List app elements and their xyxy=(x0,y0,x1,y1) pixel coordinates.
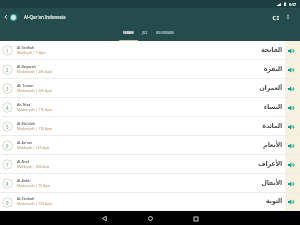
button[interactable]: BOOKMARK xyxy=(156,26,175,41)
staticText: SURAH xyxy=(123,31,134,35)
staticText: JUZ xyxy=(142,31,148,35)
staticText: 9:17 xyxy=(289,2,296,7)
staticText: At-Taubah xyxy=(17,196,35,201)
staticText: آلعمران xyxy=(259,84,282,92)
staticText: Makkiyah | 206 Ayat xyxy=(17,164,50,169)
button[interactable]: SURAH xyxy=(123,26,134,41)
button[interactable]: 3 xyxy=(0,79,300,98)
staticText: 9 xyxy=(6,200,9,206)
button[interactable]: 9 xyxy=(0,193,300,211)
button[interactable]: Play audio xyxy=(285,155,300,174)
staticText: Madaniyah | 75 Ayat xyxy=(17,183,51,188)
staticText: الأنفال xyxy=(261,179,282,187)
staticText: Al-A'raf xyxy=(17,159,30,164)
staticText: An-Nisa' xyxy=(17,102,32,107)
button[interactable]: Play audio xyxy=(285,79,300,98)
button[interactable]: 1 xyxy=(0,41,300,60)
staticText: Al-Baqarah xyxy=(17,64,36,69)
staticText: الأنعام xyxy=(263,141,282,149)
staticText: المائدة xyxy=(262,122,282,130)
button[interactable]: JUZ xyxy=(142,26,148,41)
button[interactable]: Play audio xyxy=(285,136,300,155)
button[interactable]: Play audio xyxy=(285,174,300,193)
button[interactable]: Play audio xyxy=(285,117,300,136)
staticText: Madaniyah | 176 Ayat xyxy=(17,107,53,112)
button[interactable]: Back xyxy=(2,13,10,21)
staticText: Makkiyah | 7 Ayat xyxy=(17,50,46,55)
staticText: Ali 'Imran xyxy=(17,83,34,88)
staticText: 8 xyxy=(6,181,9,187)
staticText: Al-Ma'idah xyxy=(17,121,36,126)
button[interactable]: Play audio xyxy=(285,41,300,60)
staticText: Madaniyah | 286 Ayat xyxy=(17,69,53,74)
staticText: الأعراف xyxy=(258,160,282,168)
staticText: 7 xyxy=(6,162,9,168)
staticText: Madaniyah | 129 Ayat xyxy=(17,201,53,206)
staticText: 3 xyxy=(6,86,9,92)
button[interactable]: 5 xyxy=(0,117,300,136)
staticText: Madaniyah | 120 Ayat xyxy=(17,126,53,131)
button[interactable]: 2 xyxy=(0,60,300,79)
staticText: 5 xyxy=(6,124,9,130)
button[interactable]: Home xyxy=(144,212,157,225)
staticText: Al-Qur'an Indonesia xyxy=(24,14,66,20)
button[interactable]: 8 xyxy=(0,174,300,193)
staticText: 4 xyxy=(6,105,9,111)
button[interactable]: Recent apps xyxy=(189,212,202,225)
staticText: 1 xyxy=(6,48,9,54)
staticText: 6 xyxy=(6,143,9,149)
button[interactable]: 6 xyxy=(0,136,300,155)
staticText: Al-Fatihah xyxy=(17,45,35,50)
button[interactable]: 7 xyxy=(0,155,300,174)
staticText: Madaniyah | 200 Ayat xyxy=(17,88,53,93)
staticText: Al-Anfal xyxy=(17,178,31,183)
staticText: الفاتحة xyxy=(260,46,282,54)
staticText: التوبة xyxy=(265,197,282,205)
button[interactable]: Sort xyxy=(270,12,281,23)
staticText: Makkiyah | 165 Ayat xyxy=(17,145,50,150)
button[interactable]: Play audio xyxy=(285,60,300,79)
staticText: 2 xyxy=(6,67,9,73)
staticText: BOOKMARK xyxy=(156,31,175,35)
button[interactable]: 4 xyxy=(0,98,300,117)
button[interactable]: Play audio xyxy=(285,98,300,117)
button[interactable]: Play audio xyxy=(285,193,300,211)
staticText: النساء xyxy=(263,103,282,111)
button[interactable]: More options xyxy=(283,12,293,22)
staticText: Al-An'am xyxy=(17,140,33,145)
staticText: البقرة xyxy=(263,65,282,73)
button[interactable]: Back xyxy=(98,212,111,225)
